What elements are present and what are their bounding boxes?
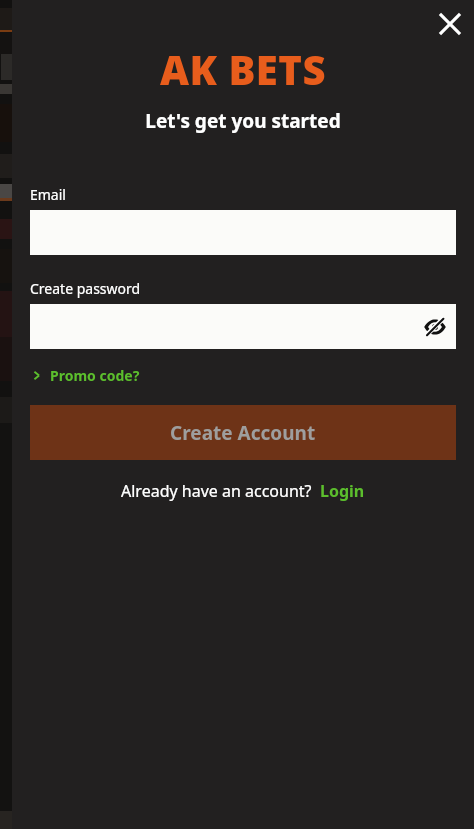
button[interactable]: Show password — [414, 306, 456, 348]
staticText: Promo code? — [50, 366, 140, 385]
button[interactable]: Close — [426, 0, 474, 48]
staticText: AK BETS — [12, 42, 474, 96]
staticText: Email — [30, 185, 66, 204]
staticText: Already have an account? — [121, 480, 312, 502]
button[interactable]: Promo code? — [30, 363, 140, 388]
button[interactable]: Show password — [30, 304, 456, 349]
staticText: Create Account — [170, 420, 316, 446]
staticText: Login — [320, 480, 365, 502]
button[interactable]: Login — [320, 480, 365, 502]
staticText: Create password — [30, 279, 141, 298]
button[interactable]: Create Account — [30, 405, 456, 460]
staticText: Let's get you started — [12, 108, 474, 134]
